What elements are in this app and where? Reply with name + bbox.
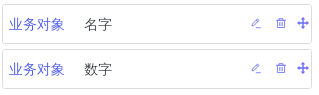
button[interactable]: Move [297, 17, 309, 29]
staticText: 名字 [84, 16, 112, 34]
button[interactable]: 业务对象 [2, 4, 312, 44]
button[interactable]: Edit [251, 64, 260, 73]
button[interactable]: Edit [251, 19, 260, 28]
button[interactable]: Delete [276, 63, 286, 73]
staticText: 业务对象 [9, 16, 65, 34]
button[interactable]: Move [297, 62, 309, 74]
staticText: 数字 [84, 61, 112, 79]
button[interactable]: Delete [276, 18, 286, 28]
button[interactable]: 业务对象 [2, 49, 312, 89]
staticText: 业务对象 [9, 61, 65, 79]
